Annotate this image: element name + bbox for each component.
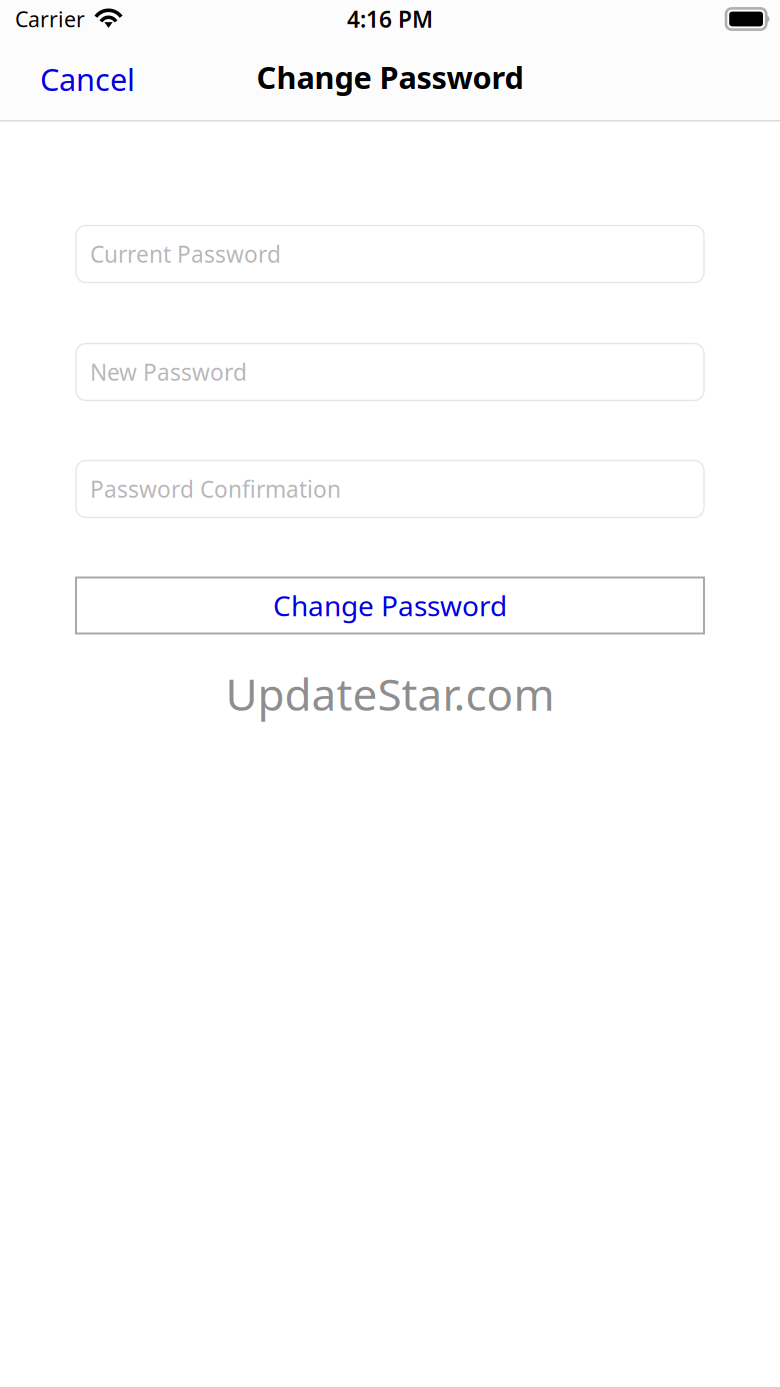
staticText: Cancel (40, 59, 135, 99)
staticText: Change Password (256, 57, 523, 97)
button[interactable]: Current Password (76, 225, 704, 282)
button[interactable]: Password Confirmation (76, 460, 704, 517)
button[interactable]: New Password (76, 343, 704, 400)
staticText: UpdateStar.com (225, 664, 554, 723)
staticText: 4:16 PM (347, 4, 433, 34)
staticText: Carrier (15, 5, 85, 33)
staticText: Change Password (273, 587, 507, 624)
staticText: New Password (90, 357, 247, 387)
button[interactable]: Change Password (76, 577, 704, 633)
staticText: Password Confirmation (90, 474, 341, 504)
staticText: Current Password (90, 239, 281, 269)
button[interactable]: Cancel (22, 45, 153, 113)
